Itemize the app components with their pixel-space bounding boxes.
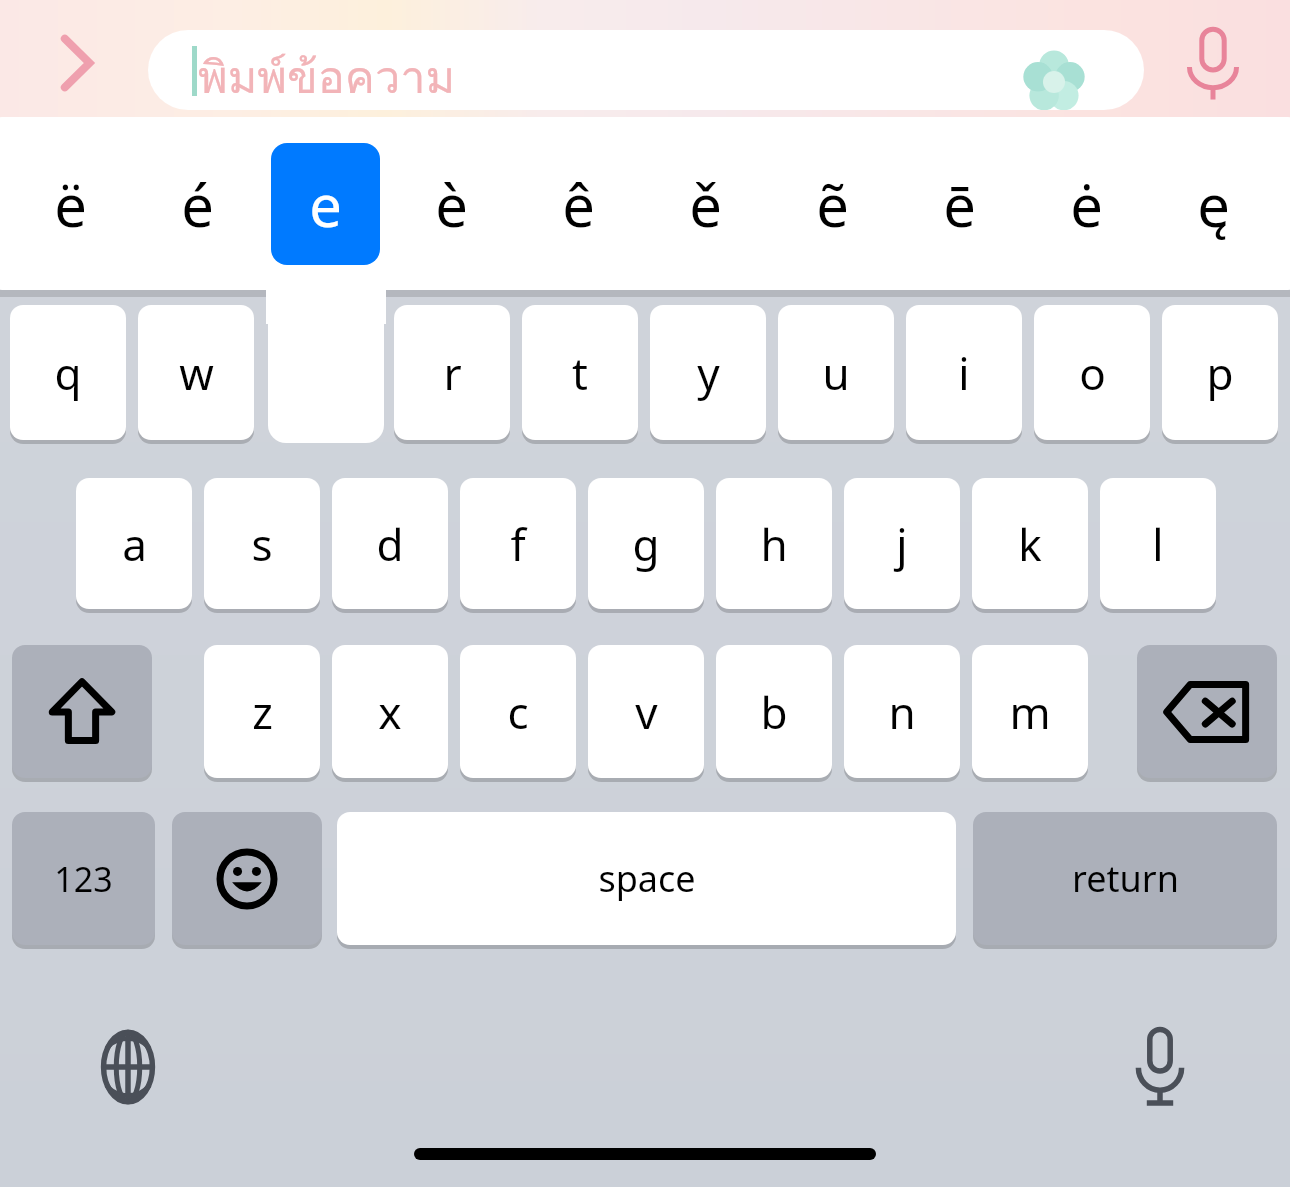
staticText: ē <box>943 165 976 244</box>
staticText: t <box>572 343 588 403</box>
staticText: ę <box>1197 165 1230 244</box>
button[interactable]: c <box>460 645 576 778</box>
staticText: y <box>697 343 720 403</box>
staticText: è <box>435 165 468 244</box>
button[interactable]: j <box>844 478 960 609</box>
button[interactable]: z <box>204 645 320 778</box>
button[interactable]: é <box>143 143 251 265</box>
staticText: 123 <box>54 856 113 902</box>
staticText: j <box>896 514 908 574</box>
staticText: ẽ <box>816 165 849 244</box>
button[interactable]: k <box>972 478 1088 609</box>
staticText: g <box>632 514 660 574</box>
staticText: k <box>1018 514 1042 574</box>
button[interactable]: y <box>650 305 766 440</box>
button[interactable]: è <box>397 143 505 265</box>
staticText: m <box>1009 682 1051 742</box>
button[interactable]: Expand <box>28 28 124 98</box>
staticText: i <box>958 343 970 403</box>
button[interactable]: s <box>204 478 320 609</box>
button[interactable]: a <box>76 478 192 609</box>
staticText: r <box>443 343 462 403</box>
button[interactable]: 123 <box>12 812 155 945</box>
button[interactable]: Shift <box>12 645 152 778</box>
staticText: z <box>252 682 273 742</box>
button[interactable]: ě <box>651 143 759 265</box>
button[interactable]: h <box>716 478 832 609</box>
staticText: return <box>1072 854 1179 903</box>
staticText: é <box>181 165 214 244</box>
staticText: a <box>122 514 147 574</box>
button[interactable]: space <box>337 812 956 945</box>
button[interactable]: ē <box>905 143 1013 265</box>
button[interactable]: d <box>332 478 448 609</box>
staticText: h <box>760 514 788 574</box>
staticText: s <box>251 514 273 574</box>
button[interactable]: Stickers <box>1016 44 1092 110</box>
staticText: n <box>888 682 916 742</box>
button[interactable]: q <box>10 305 126 440</box>
button[interactable]: w <box>138 305 254 440</box>
staticText: o <box>1079 343 1106 403</box>
button[interactable]: Voice input <box>1168 24 1258 104</box>
staticText: x <box>378 682 402 742</box>
staticText: v <box>635 682 658 742</box>
button[interactable]: ė <box>1032 143 1140 265</box>
button[interactable]: Backspace <box>1137 645 1277 778</box>
button[interactable]: n <box>844 645 960 778</box>
staticText: c <box>507 682 529 742</box>
staticText: พิมพ์ข้อความ <box>198 41 456 110</box>
button[interactable]: b <box>716 645 832 778</box>
button[interactable]: ẽ <box>778 143 886 265</box>
button[interactable]: ę <box>1159 143 1267 265</box>
staticText: q <box>54 343 82 403</box>
staticText: space <box>598 854 696 903</box>
button[interactable]: o <box>1034 305 1150 440</box>
staticText: u <box>822 343 850 403</box>
button[interactable]: l <box>1100 478 1216 609</box>
staticText: ě <box>689 165 722 244</box>
staticText: b <box>760 682 788 742</box>
button[interactable]: u <box>778 305 894 440</box>
button[interactable]: i <box>906 305 1022 440</box>
button[interactable]: Emoji <box>172 812 322 945</box>
button[interactable]: f <box>460 478 576 609</box>
button[interactable]: g <box>588 478 704 609</box>
button[interactable]: e <box>271 143 380 265</box>
staticText: p <box>1206 343 1234 403</box>
button[interactable]: พิมพ์ข้อความ <box>148 30 1144 110</box>
staticText: d <box>376 514 404 574</box>
button[interactable]: v <box>588 645 704 778</box>
staticText: l <box>1152 514 1164 574</box>
staticText: ë <box>54 165 87 244</box>
staticText: ė <box>1070 165 1103 244</box>
button[interactable]: t <box>522 305 638 440</box>
button[interactable]: ë <box>16 143 124 265</box>
button[interactable]: x <box>332 645 448 778</box>
staticText: ê <box>562 165 595 244</box>
button[interactable]: return <box>973 812 1277 945</box>
button[interactable]: p <box>1162 305 1278 440</box>
staticText: e <box>309 165 342 244</box>
button[interactable]: r <box>394 305 510 440</box>
button[interactable]: m <box>972 645 1088 778</box>
button[interactable]: Dictation <box>1116 1023 1204 1111</box>
button[interactable]: ê <box>524 143 632 265</box>
staticText: w <box>179 343 214 403</box>
staticText: f <box>510 514 526 574</box>
button[interactable]: Change keyboard <box>84 1023 172 1111</box>
